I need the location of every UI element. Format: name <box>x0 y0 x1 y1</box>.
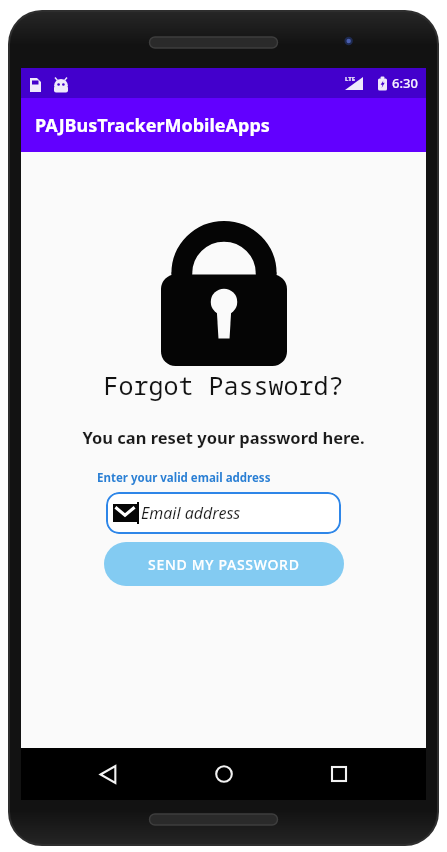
staticText: 6:30 <box>392 74 418 92</box>
button[interactable]: Back <box>79 748 137 800</box>
staticText: Email address <box>141 502 241 524</box>
staticText: Enter your valid email address <box>97 470 271 486</box>
staticText: SEND MY PASSWORD <box>148 555 300 574</box>
button[interactable]: Email address <box>106 492 341 534</box>
staticText: Forgot Password? <box>103 368 344 402</box>
staticText: PAJBusTrackerMobileApps <box>35 113 270 138</box>
button[interactable]: Home <box>195 748 253 800</box>
staticText: You can reset your password here. <box>82 426 365 448</box>
staticText: LTE <box>345 75 356 83</box>
button[interactable]: SEND MY PASSWORD <box>104 542 344 586</box>
button[interactable]: Recent apps <box>310 748 368 800</box>
